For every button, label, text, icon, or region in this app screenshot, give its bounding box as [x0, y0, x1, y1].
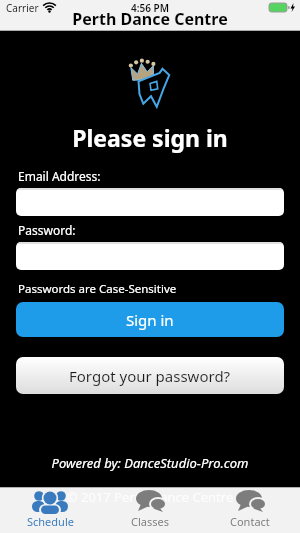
button[interactable]: Schedule	[0, 487, 100, 533]
button[interactable]	[16, 188, 284, 216]
staticText: Email Address:	[18, 168, 101, 184]
staticText: © 2017 Perth Dance Centre	[0, 488, 300, 506]
staticText: Schedule	[27, 514, 74, 529]
staticText: Perth Dance Centre	[0, 8, 300, 30]
staticText: Carrier	[6, 1, 39, 15]
staticText: Password:	[18, 222, 76, 238]
staticText: Please sign in	[0, 122, 300, 153]
staticText: Classes	[131, 514, 169, 529]
button[interactable]: Sign in	[16, 302, 284, 337]
staticText: Passwords are Case-Sensitive	[18, 281, 177, 297]
button[interactable]	[16, 242, 284, 270]
button[interactable]: Powered by: DanceStudio-Pro.com	[0, 454, 300, 472]
button[interactable]: Classes	[100, 487, 200, 533]
staticText: Sign in	[126, 310, 174, 330]
button[interactable]: Forgot your password?	[16, 357, 284, 394]
staticText: 4:56 PM	[0, 1, 300, 15]
button[interactable]: Contact	[200, 487, 300, 533]
staticText: Forgot your password?	[69, 366, 231, 386]
staticText: Contact	[230, 514, 270, 529]
